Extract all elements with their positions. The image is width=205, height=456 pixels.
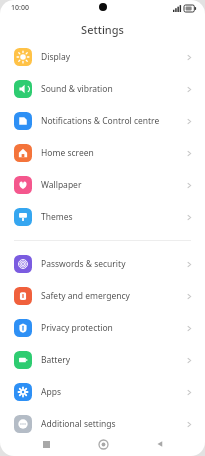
button[interactable]: Passwords & security — [0, 248, 205, 280]
staticText: Themes — [41, 211, 185, 223]
button[interactable]: Recent apps — [34, 432, 58, 456]
button[interactable]: Back — [148, 432, 172, 456]
button[interactable]: Safety and emergency — [0, 280, 205, 312]
staticText: Privacy protection — [41, 322, 185, 334]
button[interactable]: Wallpaper — [0, 169, 205, 201]
staticText: Settings — [0, 22, 205, 37]
button[interactable]: Home screen — [0, 137, 205, 169]
button[interactable]: Sound & vibration — [0, 73, 205, 105]
button[interactable]: Privacy protection — [0, 312, 205, 344]
button[interactable]: Battery — [0, 344, 205, 376]
staticText: Sound & vibration — [41, 83, 185, 95]
button[interactable]: Notifications & Control centre — [0, 105, 205, 137]
staticText: Battery — [41, 354, 185, 366]
button[interactable]: Additional settings — [0, 408, 205, 440]
button[interactable]: Apps — [0, 376, 205, 408]
button[interactable]: Themes — [0, 201, 205, 233]
staticText: Home screen — [41, 147, 185, 159]
staticText: 10:00 — [11, 3, 29, 13]
button[interactable]: Home — [91, 432, 115, 456]
staticText: Additional settings — [41, 418, 185, 430]
staticText: Wallpaper — [41, 179, 185, 191]
staticText: Safety and emergency — [41, 290, 185, 302]
button[interactable]: Display — [0, 41, 205, 73]
staticText: Notifications & Control centre — [41, 115, 185, 127]
staticText: Display — [41, 51, 185, 63]
staticText: Apps — [41, 386, 185, 398]
staticText: Passwords & security — [41, 258, 185, 270]
